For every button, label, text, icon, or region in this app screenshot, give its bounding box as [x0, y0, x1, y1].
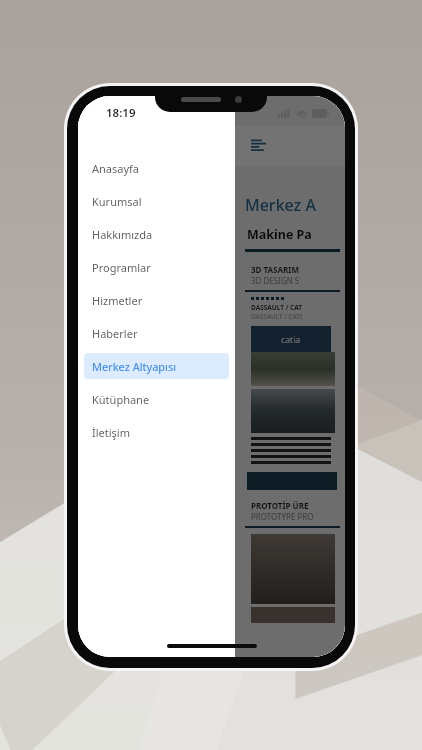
- staticText: İletişim: [92, 425, 130, 440]
- staticText: Makine Pa: [247, 226, 312, 243]
- staticText: DASSAULT / CATI: [251, 312, 303, 321]
- button[interactable]: Hakkımızda: [84, 221, 229, 247]
- button[interactable]: Merkez Altyapısı: [84, 353, 229, 379]
- staticText: Kurumsal: [92, 194, 142, 209]
- staticText: Hizmetler: [92, 293, 143, 308]
- staticText: catia: [281, 333, 301, 345]
- staticText: Programlar: [92, 260, 151, 275]
- button[interactable]: Menu: [247, 135, 269, 157]
- button[interactable]: Programlar: [84, 254, 229, 280]
- staticText: 3D TASARIM: [251, 264, 299, 275]
- button[interactable]: Kurumsal: [84, 188, 229, 214]
- staticText: DASSAULT / CAT: [251, 303, 302, 312]
- staticText: Merkez Altyapısı: [92, 359, 177, 374]
- staticText: Haberler: [92, 326, 138, 341]
- staticText: Merkez A: [245, 194, 316, 216]
- staticText: Anasayfa: [92, 161, 140, 176]
- button[interactable]: Haberler: [84, 320, 229, 346]
- staticText: PROTOTİP ÜRE: [251, 500, 309, 511]
- button[interactable]: Anasayfa: [84, 155, 229, 181]
- button[interactable]: Kütüphane: [84, 386, 229, 412]
- button[interactable]: İletişim: [84, 419, 229, 445]
- staticText: 18:19: [106, 105, 136, 121]
- staticText: 3D DESIGN S: [251, 275, 300, 286]
- staticText: PROTOTYPE PRO: [251, 511, 314, 522]
- button[interactable]: Hizmetler: [84, 287, 229, 313]
- staticText: Hakkımızda: [92, 227, 153, 242]
- staticText: Kütüphane: [92, 392, 150, 407]
